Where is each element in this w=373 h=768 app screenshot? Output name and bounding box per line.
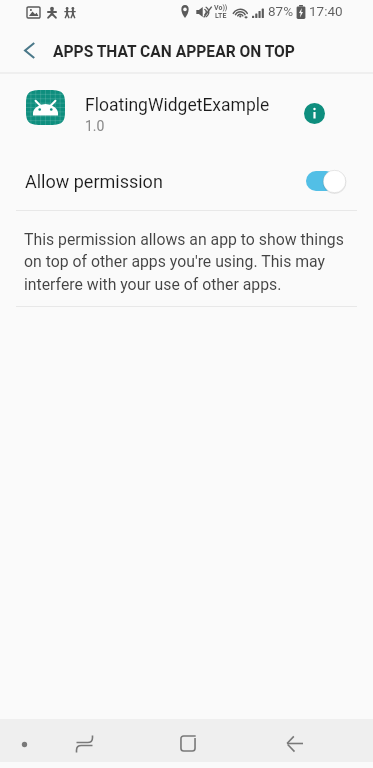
button[interactable]: Recent apps: [60, 722, 108, 765]
button[interactable]: Back: [270, 722, 318, 765]
button[interactable]: App info: [304, 103, 325, 124]
staticText: Allow permission: [25, 171, 163, 192]
staticText: 87%: [268, 3, 294, 19]
staticText: LTE: [215, 12, 227, 20]
staticText: 17:40: [309, 3, 343, 19]
staticText: Vo)): [214, 4, 228, 12]
button[interactable]: Home: [164, 722, 212, 765]
staticText: APPS THAT CAN APPEAR ON TOP: [53, 43, 295, 61]
button[interactable]: Navigate up: [6, 28, 50, 73]
button[interactable]: FloatingWidgetExample: [0, 74, 373, 148]
staticText: This permission allows an app to show th…: [24, 230, 350, 294]
button[interactable]: Allow permission: [0, 150, 373, 210]
staticText: FloatingWidgetExample: [85, 95, 270, 116]
staticText: 1.0: [85, 118, 105, 134]
